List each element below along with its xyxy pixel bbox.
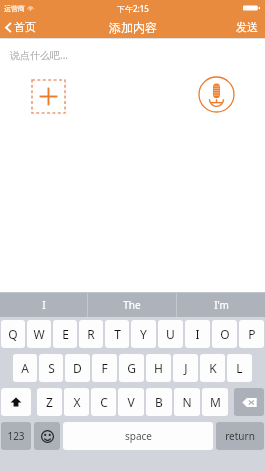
staticText: M: [210, 394, 221, 410]
button[interactable]: Z: [37, 388, 62, 416]
button[interactable]: W: [27, 320, 51, 348]
button[interactable]: A: [13, 354, 37, 382]
button[interactable]: S: [39, 354, 63, 382]
staticText: T: [114, 326, 121, 342]
staticText: 说点什么吧...: [10, 48, 69, 62]
button[interactable]: space: [63, 422, 213, 450]
button[interactable]: 发送: [229, 17, 265, 37]
button[interactable]: L: [227, 354, 252, 382]
staticText: The: [123, 298, 141, 312]
staticText: F: [101, 360, 108, 376]
staticText: L: [236, 360, 243, 376]
staticText: X: [73, 394, 81, 410]
button[interactable]: C: [91, 388, 116, 416]
staticText: Y: [140, 326, 147, 342]
button[interactable]: E: [53, 320, 77, 348]
staticText: H: [154, 360, 163, 376]
staticText: K: [209, 360, 217, 376]
button[interactable]: U: [158, 320, 183, 348]
button[interactable]: P: [239, 320, 264, 348]
staticText: J: [184, 360, 188, 376]
staticText: space: [125, 429, 152, 443]
staticText: 123: [7, 429, 25, 443]
button[interactable]: G: [119, 354, 144, 382]
staticText: D: [73, 360, 82, 376]
staticText: P: [248, 326, 256, 342]
staticText: C: [100, 394, 108, 410]
button[interactable]: return: [216, 422, 264, 450]
button[interactable]: Voice record: [198, 76, 235, 113]
staticText: G: [127, 360, 136, 376]
button[interactable]: D: [65, 354, 90, 382]
staticText: Z: [46, 394, 53, 410]
button[interactable]: Y: [131, 320, 156, 348]
staticText: A: [21, 360, 29, 376]
button[interactable]: 首页: [0, 18, 44, 36]
button[interactable]: V: [118, 388, 144, 416]
staticText: Q: [8, 326, 18, 342]
button[interactable]: 123: [1, 422, 31, 450]
staticText: I: [195, 326, 200, 342]
button[interactable]: K: [200, 354, 225, 382]
staticText: S: [48, 360, 55, 376]
staticText: U: [166, 326, 175, 342]
button[interactable]: Q: [1, 320, 25, 348]
staticText: N: [182, 394, 192, 410]
staticText: B: [155, 394, 163, 410]
staticText: 下午2:15: [117, 3, 149, 14]
button[interactable]: O: [212, 320, 237, 348]
button[interactable]: I: [0, 293, 87, 317]
button[interactable]: I'm: [177, 293, 265, 317]
button[interactable]: Emoji: [34, 422, 60, 450]
staticText: R: [87, 326, 95, 342]
button[interactable]: H: [146, 354, 171, 382]
button[interactable]: J: [173, 354, 198, 382]
button[interactable]: R: [79, 320, 103, 348]
staticText: E: [62, 326, 69, 342]
button[interactable]: Add media: [32, 80, 65, 113]
staticText: 添加内容: [109, 20, 157, 35]
staticText: return: [225, 429, 255, 443]
staticText: 首页: [14, 20, 36, 34]
button[interactable]: I: [185, 320, 210, 348]
button[interactable]: M: [202, 388, 228, 416]
staticText: W: [33, 326, 45, 342]
button[interactable]: Shift: [1, 388, 31, 416]
staticText: 发送: [236, 20, 258, 34]
button[interactable]: T: [105, 320, 129, 348]
button[interactable]: B: [146, 388, 172, 416]
button[interactable]: N: [174, 388, 200, 416]
staticText: 运营商: [4, 4, 25, 13]
button[interactable]: F: [92, 354, 117, 382]
staticText: I: [42, 298, 46, 312]
button[interactable]: Backspace: [234, 388, 264, 416]
staticText: I'm: [214, 298, 229, 312]
staticText: O: [220, 326, 230, 342]
staticText: V: [127, 394, 135, 410]
button[interactable]: X: [64, 388, 89, 416]
button[interactable]: The: [88, 293, 176, 317]
